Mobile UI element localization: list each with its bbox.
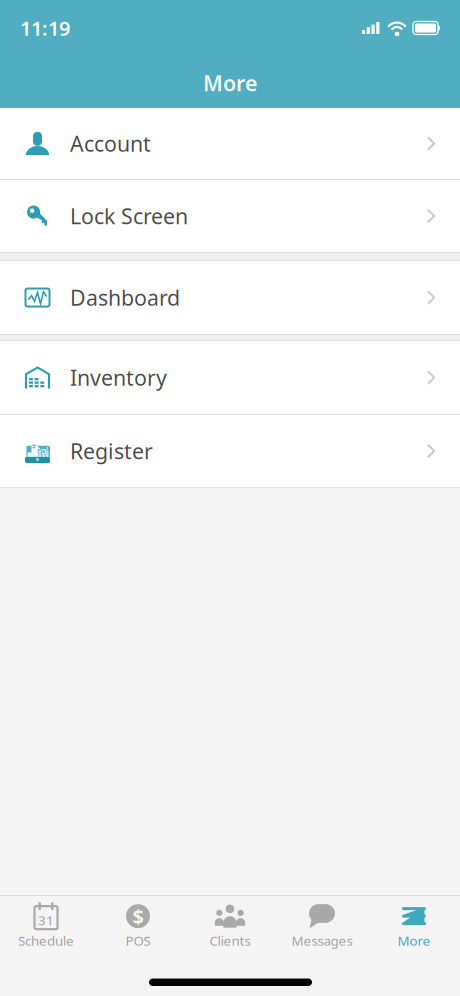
staticText: POS: [125, 932, 150, 949]
staticText: Dashboard: [70, 283, 180, 312]
button[interactable]: Register: [0, 415, 460, 487]
staticText: More: [397, 932, 430, 949]
button[interactable]: Messages: [276, 897, 368, 955]
staticText: $: [132, 903, 143, 929]
button[interactable]: Lock Screen: [0, 180, 460, 252]
staticText: Messages: [291, 932, 352, 949]
staticText: 31: [38, 911, 54, 929]
staticText: Account: [70, 129, 151, 158]
staticText: Inventory: [70, 363, 167, 392]
button[interactable]: More: [368, 897, 460, 955]
button[interactable]: Clients: [184, 897, 276, 955]
button[interactable]: Account: [0, 108, 460, 180]
staticText: Register: [70, 437, 153, 465]
staticText: Clients: [209, 932, 250, 949]
staticText: More: [203, 69, 257, 97]
staticText: Schedule: [18, 932, 74, 949]
button[interactable]: 31: [0, 897, 92, 955]
staticText: 11:19: [20, 15, 70, 41]
button[interactable]: Inventory: [0, 341, 460, 415]
staticText: Lock Screen: [70, 202, 188, 230]
button[interactable]: $: [92, 897, 184, 955]
button[interactable]: Dashboard: [0, 261, 460, 334]
